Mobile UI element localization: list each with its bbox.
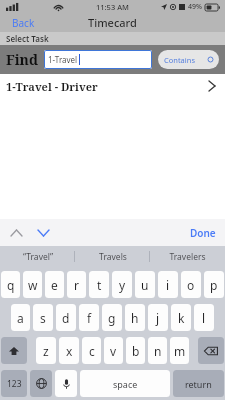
staticText: w [28, 277, 38, 293]
staticText: m [174, 343, 186, 359]
staticText: e [51, 277, 58, 293]
staticText: j [156, 310, 160, 326]
staticText: space [113, 378, 138, 390]
staticText: n [154, 343, 162, 359]
staticText: 49% [188, 2, 202, 12]
button[interactable]: t [89, 271, 109, 298]
button[interactable]: b [126, 337, 145, 364]
staticText: a [17, 310, 24, 326]
button[interactable]: 1-Travel - Driver [0, 74, 225, 98]
button[interactable]: m [170, 337, 189, 364]
staticText: c [89, 343, 95, 359]
staticText: d [62, 310, 70, 326]
button[interactable]: Previous field [7, 224, 25, 242]
button[interactable]: Travelers [150, 246, 225, 267]
button[interactable]: a [11, 304, 30, 331]
button[interactable]: g [102, 304, 122, 331]
staticText: return [185, 378, 212, 390]
staticText: s [40, 310, 46, 326]
button[interactable]: d [56, 304, 76, 331]
button[interactable]: u [135, 271, 155, 298]
staticText: Select Task [6, 33, 49, 44]
button[interactable]: r [67, 271, 86, 298]
button[interactable]: q [1, 271, 20, 298]
button[interactable]: k [171, 304, 191, 331]
button[interactable]: f [79, 304, 99, 331]
button[interactable]: space [80, 370, 170, 397]
button[interactable]: Back [2, 14, 45, 32]
button[interactable]: Next field [34, 224, 52, 242]
button[interactable]: Backspace [198, 337, 224, 364]
button[interactable]: “Travel” [0, 246, 75, 267]
button[interactable]: Shift [1, 337, 27, 364]
staticText: h [131, 310, 139, 326]
staticText: 1-Travel - Driver [6, 79, 98, 94]
button[interactable]: x [59, 337, 79, 364]
staticText: Back [12, 16, 35, 30]
button[interactable]: Done [183, 223, 223, 243]
button[interactable]: j [148, 304, 168, 331]
staticText: k [178, 310, 185, 326]
button[interactable]: o [181, 271, 201, 298]
button[interactable]: Switch keyboard language [30, 370, 52, 397]
staticText: “Travel” [23, 251, 53, 263]
staticText: 123 [7, 378, 22, 390]
staticText: l [202, 310, 206, 326]
button[interactable]: v [104, 337, 123, 364]
button[interactable]: p [204, 271, 224, 298]
button[interactable]: w [23, 271, 42, 298]
staticText: q [7, 277, 15, 293]
button[interactable]: Travels [75, 246, 150, 267]
button[interactable]: s [33, 304, 53, 331]
button[interactable]: 1-Travel [44, 50, 152, 69]
button[interactable]: Dictation [55, 370, 77, 397]
staticText: g [108, 310, 116, 326]
button[interactable]: y [112, 271, 132, 298]
staticText: r [74, 277, 79, 293]
button[interactable]: Contains [158, 50, 219, 69]
staticText: f [87, 310, 92, 326]
staticText: b [132, 343, 140, 359]
button[interactable]: return [173, 370, 224, 397]
button[interactable]: e [45, 271, 64, 298]
staticText: o [187, 277, 195, 293]
button[interactable]: l [194, 304, 214, 331]
button[interactable]: c [82, 337, 101, 364]
staticText: 1-Travel [48, 54, 78, 65]
staticText: p [210, 277, 218, 293]
staticText: Travels [99, 251, 127, 263]
staticText: y [119, 277, 126, 293]
button[interactable]: i [158, 271, 178, 298]
staticText: i [166, 277, 170, 293]
staticText: z [43, 343, 49, 359]
staticText: Timecard [88, 15, 137, 30]
staticText: Contains [164, 55, 195, 65]
button[interactable]: h [125, 304, 145, 331]
staticText: t [97, 277, 102, 293]
button[interactable]: n [148, 337, 167, 364]
staticText: 11:53 AM [96, 2, 129, 12]
staticText: v [110, 343, 117, 359]
button[interactable]: 123 [1, 370, 27, 397]
staticText: x [66, 343, 73, 359]
staticText: Find [6, 50, 39, 69]
staticText: Done [190, 226, 216, 240]
staticText: u [141, 277, 149, 293]
button[interactable]: z [36, 337, 56, 364]
staticText: Travelers [169, 251, 206, 263]
